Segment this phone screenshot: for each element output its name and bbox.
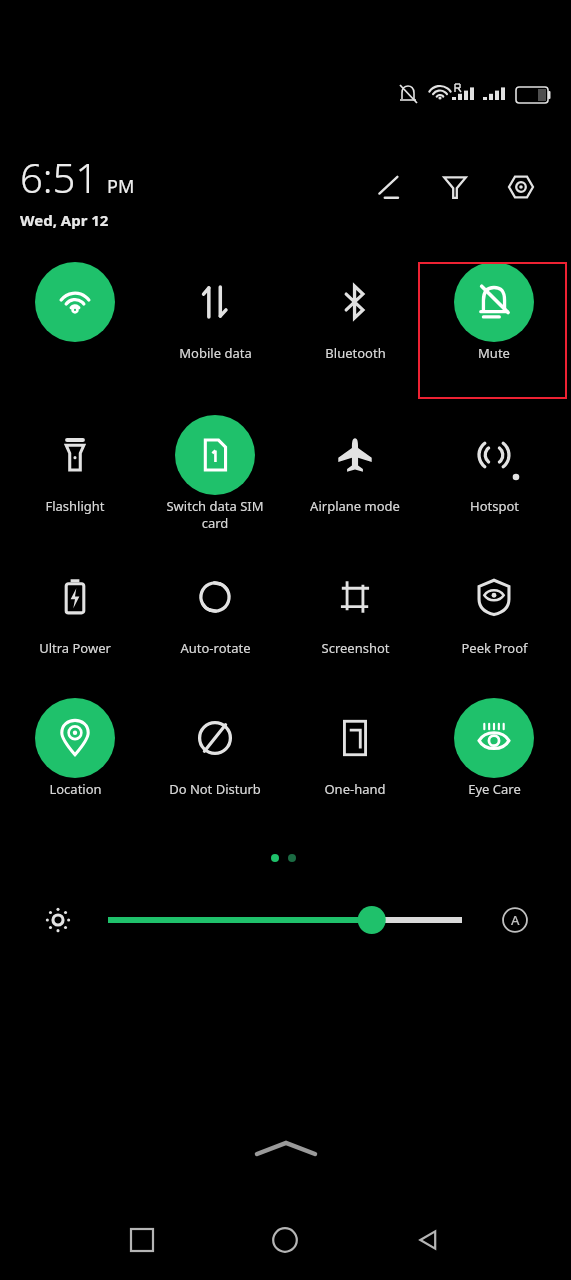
button[interactable]: Flashlight: [15, 415, 135, 515]
staticText: Screenshot: [321, 639, 390, 657]
button[interactable]: Ultra Power: [15, 557, 135, 657]
staticText: PM: [107, 174, 135, 199]
staticText: Peek Proof: [461, 639, 528, 657]
button[interactable]: Edit: [367, 165, 411, 209]
staticText: 6:51: [20, 150, 99, 204]
staticText: Mobile data: [179, 344, 252, 362]
button[interactable]: Do Not Disturb: [155, 698, 275, 798]
staticText: Airplane mode: [310, 497, 400, 515]
button[interactable]: Settings: [499, 165, 543, 209]
button[interactable]: Home: [261, 1216, 309, 1264]
button[interactable]: Mobile data: [155, 262, 275, 362]
staticText: Flashlight: [45, 497, 105, 515]
button[interactable]: Screenshot: [295, 557, 415, 657]
button[interactable]: Brightness: [34, 896, 82, 944]
button[interactable]: Airplane mode: [295, 415, 415, 515]
button[interactable]: Peek Proof: [434, 557, 554, 657]
button[interactable]: Eye Care: [434, 698, 554, 798]
button[interactable]: Auto-rotate: [155, 557, 275, 657]
button[interactable]: Wi-Fi: [15, 262, 135, 342]
button[interactable]: Filter: [433, 165, 477, 209]
staticText: Do Not Disturb: [169, 780, 261, 798]
button[interactable]: Recents: [118, 1216, 166, 1264]
staticText: Hotspot: [470, 497, 519, 515]
staticText: Switch data SIM card: [166, 497, 264, 532]
button[interactable]: Bluetooth: [295, 262, 415, 362]
staticText: A: [511, 911, 520, 929]
button[interactable]: Mute: [434, 262, 554, 362]
button[interactable]: Auto brightness: [491, 896, 539, 944]
button[interactable]: Location: [15, 698, 135, 798]
staticText: Wed, Apr 12: [20, 210, 109, 230]
staticText: Location: [49, 780, 102, 798]
staticText: Bluetooth: [325, 344, 386, 362]
staticText: 50: [519, 87, 532, 102]
staticText: Auto-rotate: [180, 639, 251, 657]
button[interactable]: [100, 896, 470, 944]
button[interactable]: Hotspot: [434, 415, 554, 515]
staticText: Mute: [478, 344, 510, 362]
staticText: Ultra Power: [39, 639, 111, 657]
button[interactable]: Back: [404, 1216, 452, 1264]
staticText: Eye Care: [468, 780, 521, 798]
button[interactable]: One-hand: [295, 698, 415, 798]
staticText: One-hand: [324, 780, 386, 798]
button[interactable]: Switch data SIM card: [155, 415, 275, 532]
